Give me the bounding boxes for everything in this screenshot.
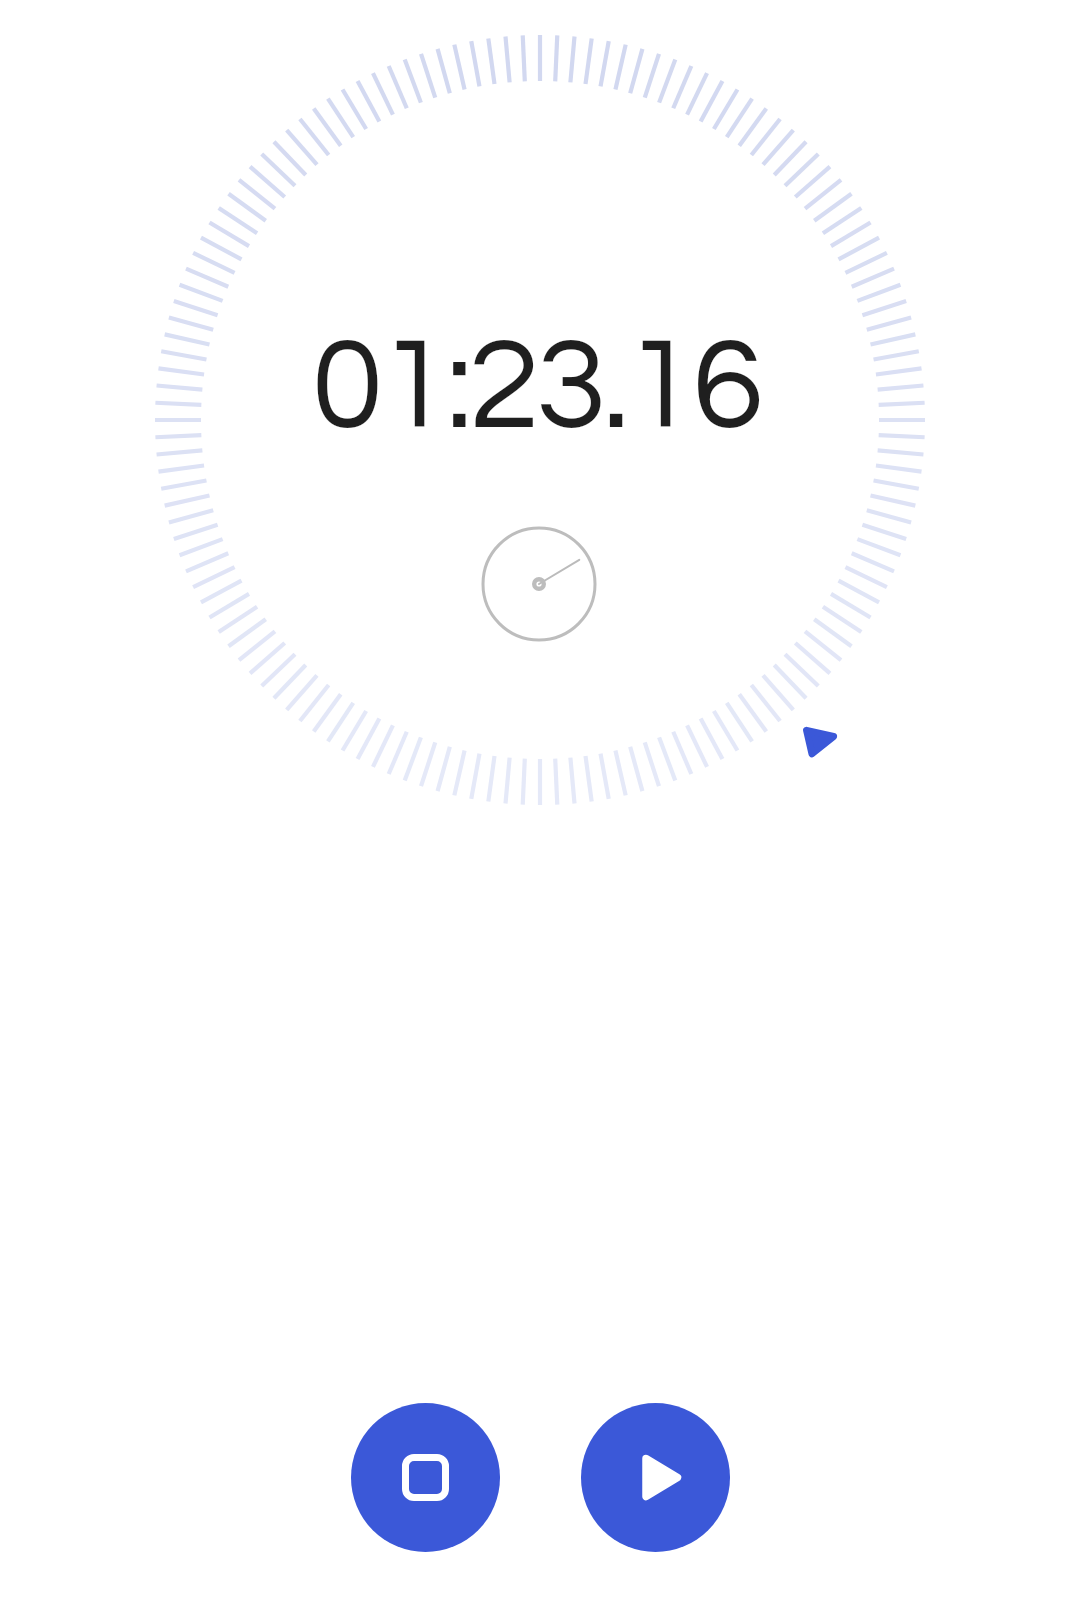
staticText: 01:23.16 bbox=[312, 321, 760, 454]
button[interactable] bbox=[581, 1403, 730, 1552]
button[interactable] bbox=[351, 1403, 500, 1552]
